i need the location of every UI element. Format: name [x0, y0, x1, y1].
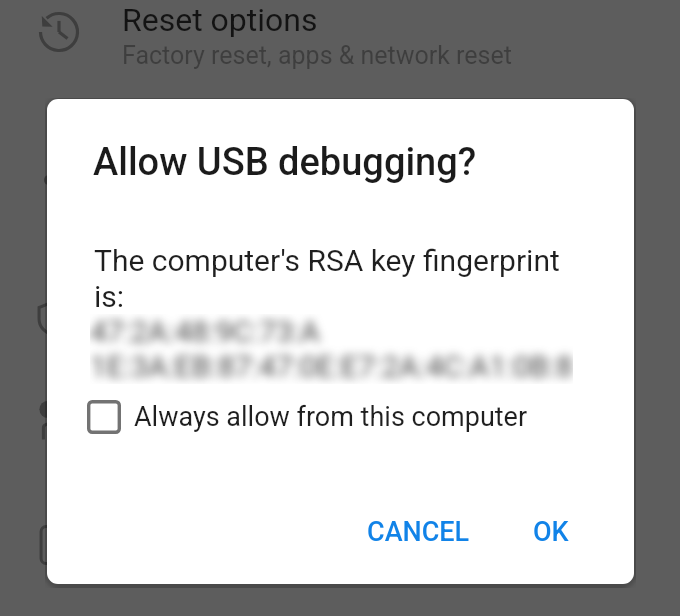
staticText: The computer's RSA key fingerprint is: — [94, 243, 574, 314]
staticText: Allow USB debugging? — [93, 140, 477, 185]
staticText: Always allow from this computer — [134, 401, 528, 433]
button[interactable]: Always allow from this computer — [85, 391, 534, 443]
other: Apps — [38, 165, 80, 207]
staticText: OK — [533, 516, 569, 548]
other: Reset options — [38, 11, 80, 53]
staticText: 47:2A:48:9C:73:A — [90, 314, 320, 349]
button[interactable]: Reset options — [0, 0, 680, 84]
button[interactable]: CANCEL — [351, 502, 486, 562]
staticText: Factory reset, apps & network reset — [122, 41, 512, 70]
other: Accounts — [35, 398, 77, 440]
other: Security — [34, 297, 76, 339]
staticText: CANCEL — [367, 516, 470, 548]
staticText: 1E:3A:EB:87:47:0E:E7:2A:4C:A1:0B:8 — [90, 349, 573, 384]
other: System — [31, 524, 73, 566]
button[interactable]: OK — [517, 502, 585, 562]
staticText: Reset options — [122, 1, 318, 39]
